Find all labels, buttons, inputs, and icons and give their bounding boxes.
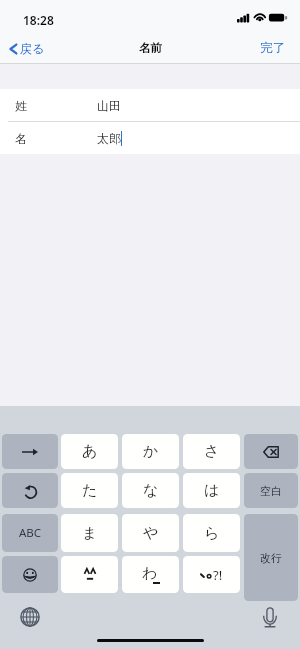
button[interactable]: [61, 556, 118, 593]
button[interactable]: 戻る: [0, 37, 55, 60]
button[interactable]: 姓: [0, 89, 300, 121]
staticText: 改行: [260, 551, 282, 565]
button[interactable]: Next keyboard: [17, 604, 43, 630]
button[interactable]: Emoji: [2, 556, 58, 593]
staticText: か: [143, 442, 159, 461]
button[interactable]: さ: [183, 434, 240, 469]
staticText: な: [143, 481, 159, 500]
button[interactable]: Dictation: [257, 604, 283, 630]
button[interactable]: Delete: [244, 434, 298, 469]
staticText: た: [82, 481, 98, 500]
button[interactable]: ら: [183, 514, 240, 552]
button[interactable]: ?!: [183, 556, 240, 593]
button[interactable]: わ: [122, 556, 179, 593]
staticText: ら: [204, 524, 220, 543]
staticText: ?!: [213, 566, 223, 584]
staticText: や: [143, 524, 159, 543]
button[interactable]: や: [122, 514, 179, 552]
button[interactable]: 完了: [248, 35, 300, 61]
button[interactable]: は: [183, 473, 240, 508]
staticText: は: [204, 481, 220, 500]
staticText: さ: [204, 442, 220, 461]
staticText: ま: [82, 524, 98, 543]
staticText: あ: [82, 442, 98, 461]
staticText: 戻る: [20, 41, 45, 56]
staticText: 山田: [97, 98, 121, 113]
button[interactable]: Space: [244, 473, 298, 508]
button[interactable]: ま: [61, 514, 118, 552]
staticText: 名: [15, 131, 27, 146]
staticText: ABC: [19, 525, 42, 541]
button[interactable]: Move cursor right: [2, 434, 58, 469]
button[interactable]: ABC: [2, 514, 58, 552]
button[interactable]: な: [122, 473, 179, 508]
button[interactable]: あ: [61, 434, 118, 469]
staticText: 18:28: [23, 12, 54, 28]
button[interactable]: Return: [244, 514, 298, 601]
button[interactable]: た: [61, 473, 118, 508]
staticText: 名前: [139, 41, 162, 55]
staticText: 空白: [260, 484, 282, 498]
staticText: わ: [142, 564, 158, 583]
button[interactable]: 名: [0, 122, 300, 154]
button[interactable]: か: [122, 434, 179, 469]
button[interactable]: Undo: [2, 473, 58, 508]
staticText: 姓: [15, 98, 27, 113]
staticText: 太郎: [97, 131, 121, 146]
